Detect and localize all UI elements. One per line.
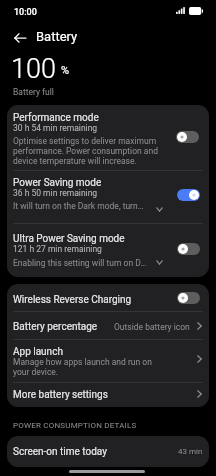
button[interactable]: Back [8,27,32,48]
staticText: 121 h 27 min remaining [13,244,102,254]
staticText: Ultra Power Saving mode [13,233,125,245]
staticText: It will turn on the Dark mode, turn… [13,201,144,211]
staticText: POWER CONSUMPTION DETAILS [13,421,137,430]
staticText: Power Saving mode [13,177,102,189]
button[interactable]: Turn off [177,189,200,201]
button[interactable]: More battery settings [7,382,209,407]
staticText: Screen-on time today [13,446,107,458]
staticText: More battery settings [13,389,108,401]
staticText: Manage how apps launch and run on your d… [13,357,163,377]
staticText: Battery full [13,87,54,97]
staticText: Performance mode [13,112,99,124]
button[interactable]: App launch [7,339,209,381]
staticText: Outside battery icon [114,322,190,332]
staticText: 30 h 54 min remaining [13,123,98,133]
button[interactable]: Battery percentage [7,311,209,339]
button[interactable]: Turn on [177,243,200,255]
staticText: 43 min [178,447,203,456]
staticText: App launch [13,346,63,358]
staticText: Optimise settings to deliver maximum per… [13,136,159,166]
staticText: Battery [36,29,78,44]
staticText: 10:00 [14,7,37,18]
staticText: Battery percentage [13,321,98,333]
staticText: 100 [11,53,56,85]
button[interactable]: Wireless Reverse Charging [7,284,209,311]
button[interactable]: Turn on [176,131,199,143]
staticText: Enabling this setting will turn on D… [13,258,147,268]
staticText: % [61,64,70,77]
button[interactable]: Turn on [177,292,200,304]
staticText: Wireless Reverse Charging [13,294,132,306]
staticText: 36 h 50 min remaining [13,188,98,198]
button[interactable]: Screen-on time today [7,436,209,467]
